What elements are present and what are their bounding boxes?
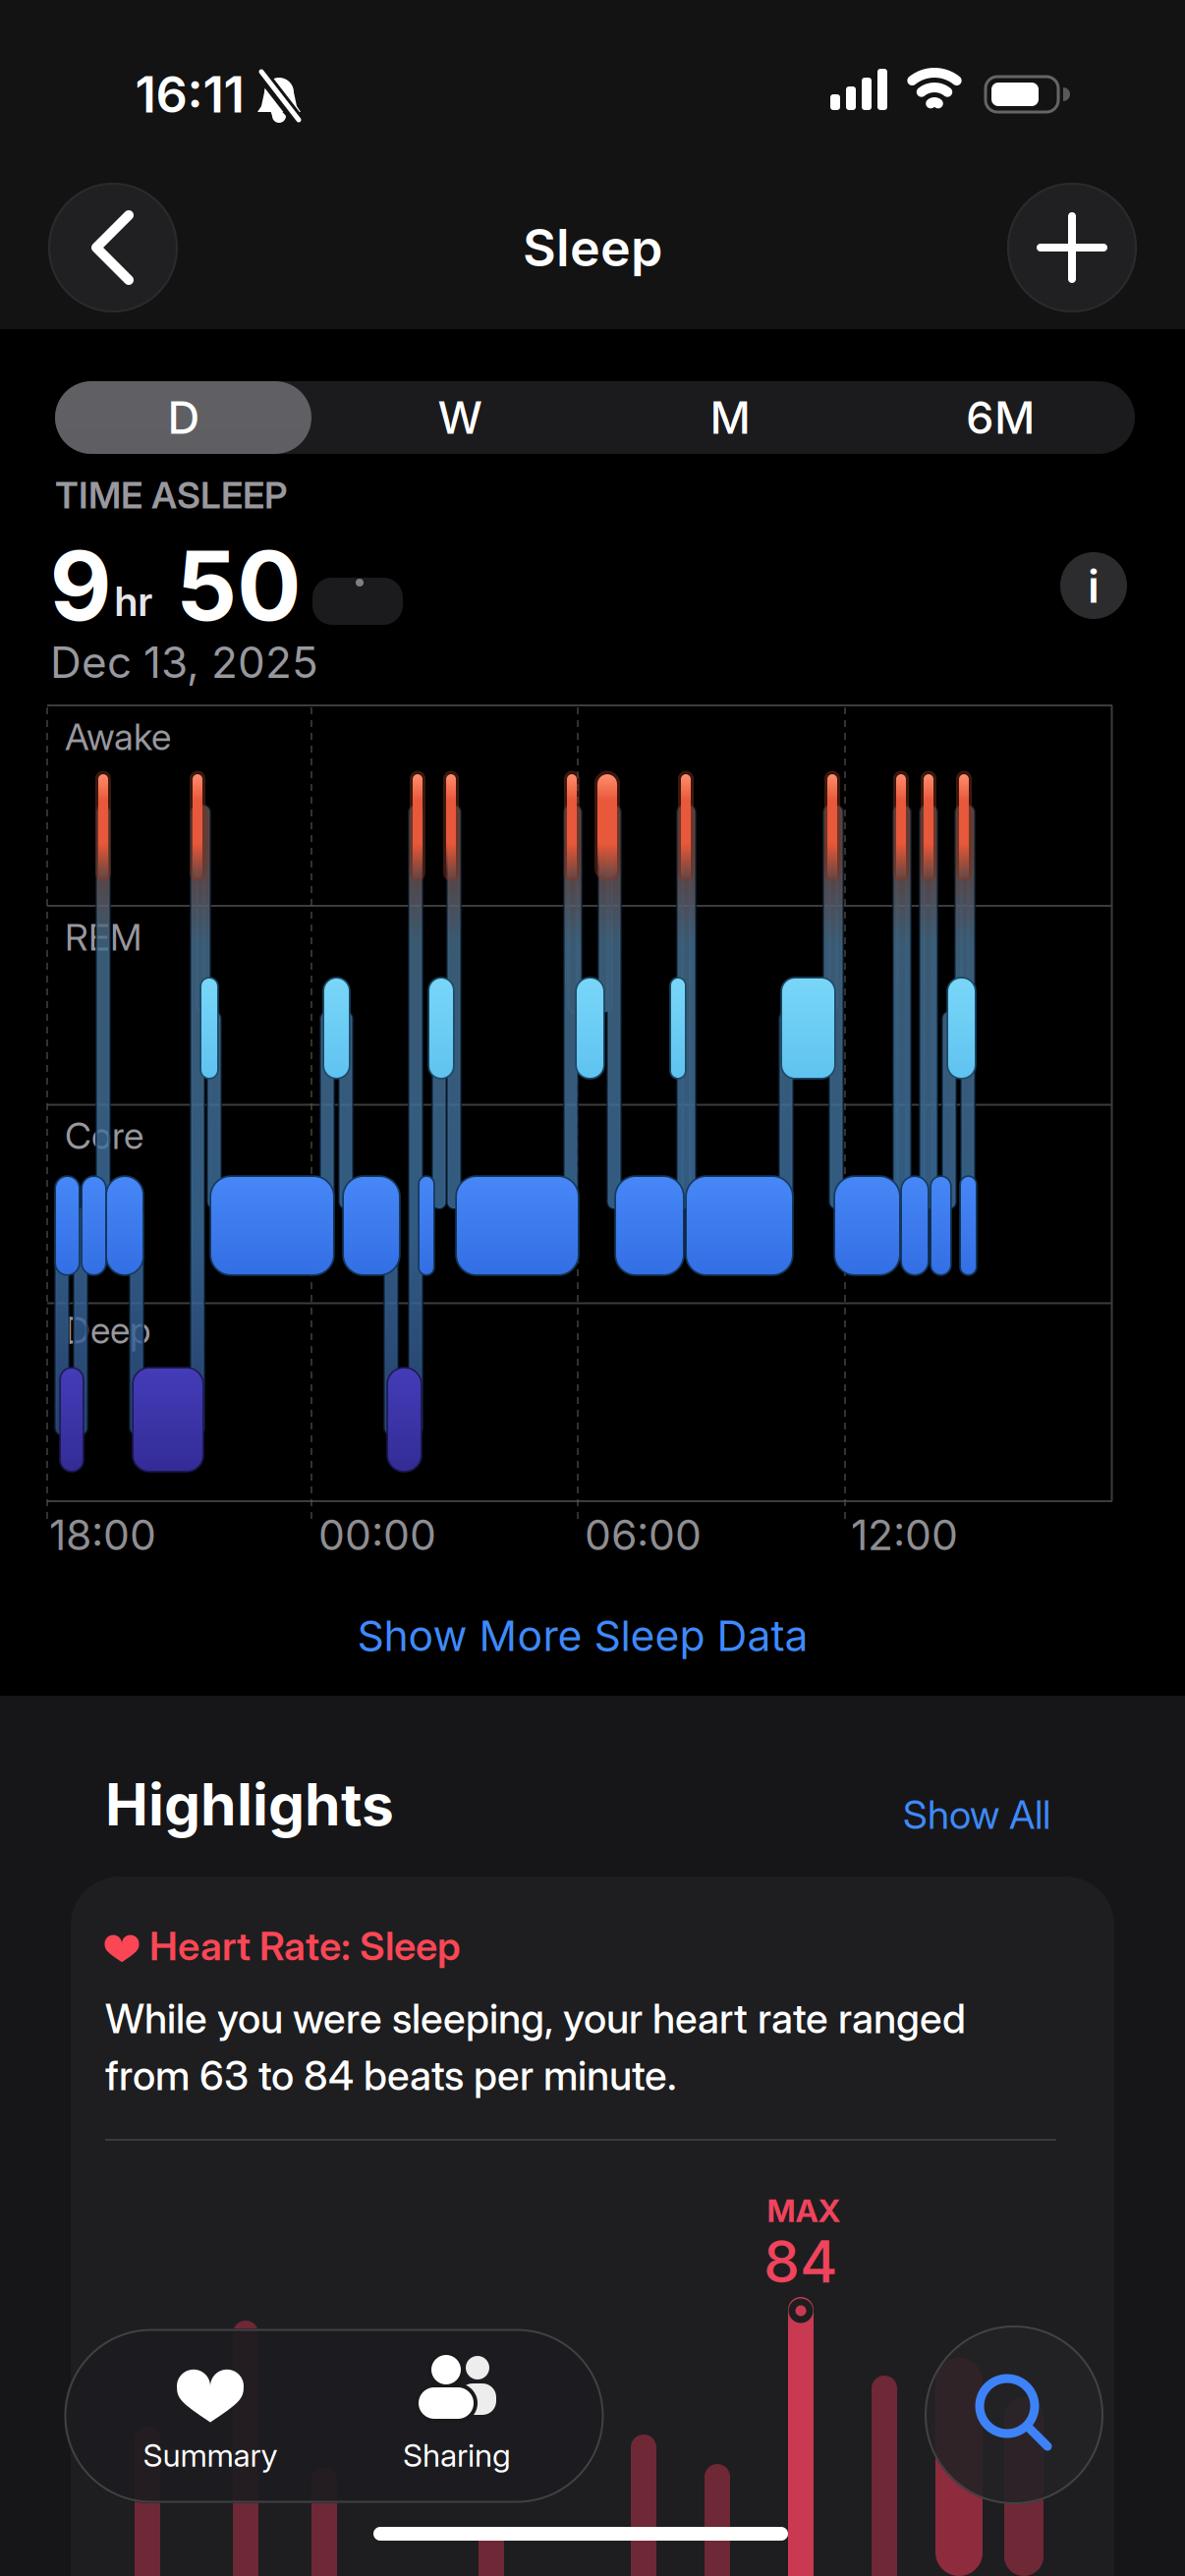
- button[interactable]: Summary: [122, 2348, 299, 2495]
- staticText: M: [710, 391, 750, 444]
- staticText: REM: [65, 916, 141, 959]
- staticText: i: [1088, 560, 1100, 613]
- staticText: 84: [763, 2228, 838, 2296]
- button[interactable]: [1007, 183, 1137, 312]
- button[interactable]: [925, 2325, 1103, 2504]
- staticText: 12:00: [851, 1510, 958, 1559]
- button[interactable]: i: [1060, 552, 1127, 619]
- button[interactable]: Show More Sleep Data: [357, 1611, 808, 1660]
- staticText: 06:00: [585, 1510, 702, 1559]
- staticText: W: [438, 391, 482, 444]
- staticText: D: [168, 391, 200, 444]
- button[interactable]: Sharing: [368, 2348, 545, 2495]
- staticText: hr: [114, 577, 153, 625]
- staticText: MAX: [767, 2192, 841, 2229]
- button[interactable]: W: [325, 381, 595, 454]
- staticText: 00:00: [318, 1510, 436, 1559]
- button[interactable]: 6M: [865, 381, 1135, 454]
- button[interactable]: M: [595, 381, 865, 454]
- staticText: from 63 to 84 beats per minute.: [105, 2051, 677, 2099]
- button[interactable]: [48, 183, 178, 312]
- staticText: Core: [65, 1114, 143, 1157]
- button[interactable]: [64, 2328, 604, 2503]
- staticText: 9: [50, 529, 112, 642]
- staticText: 18:00: [49, 1510, 156, 1559]
- staticText: Show More Sleep Data: [357, 1611, 808, 1660]
- staticText: Summary: [143, 2437, 278, 2474]
- staticText: Highlights: [105, 1770, 394, 1838]
- staticText: Dec 13, 2025: [50, 637, 318, 688]
- staticText: Heart Rate: Sleep: [149, 1923, 461, 1969]
- staticText: Sharing: [403, 2437, 511, 2474]
- staticText: Awake: [65, 715, 171, 758]
- button[interactable]: [71, 1876, 1114, 2576]
- staticText: TIME ASLEEP: [55, 474, 287, 517]
- staticText: 16:11: [135, 65, 244, 124]
- staticText: 6M: [966, 391, 1035, 444]
- staticText: 50: [176, 529, 302, 642]
- staticText: Show All: [903, 1791, 1050, 1838]
- button[interactable]: Show All: [903, 1791, 1050, 1838]
- staticText: Sleep: [523, 217, 662, 278]
- staticText: While you were sleeping, your heart rate…: [105, 1994, 966, 2042]
- button[interactable]: D: [56, 381, 312, 454]
- staticText: Deep: [65, 1309, 150, 1352]
